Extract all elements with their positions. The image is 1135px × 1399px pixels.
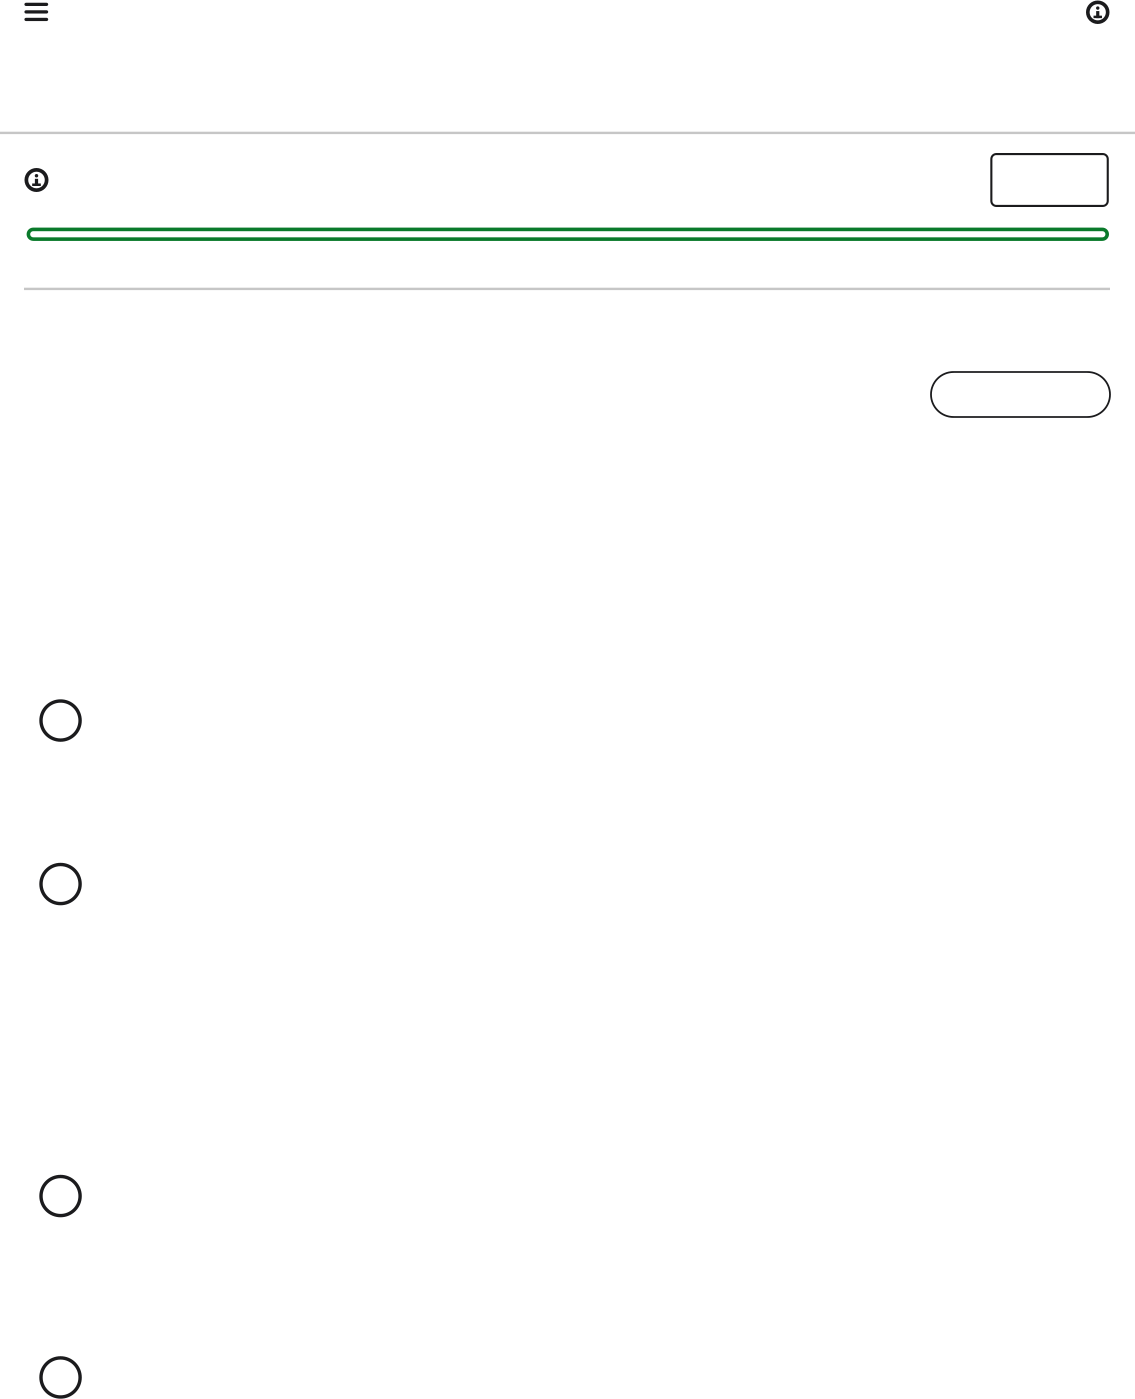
button[interactable]: Information [1086,0,1134,48]
button[interactable]: Option 3 [39,1175,1099,1295]
button[interactable]: Menu [24,3,88,51]
button[interactable]: Option 1 [39,699,1099,819]
button[interactable]: Progress count [990,153,1109,207]
button[interactable]: Continue [931,372,1110,417]
button[interactable]: About this step [24,168,72,216]
button[interactable]: Option 2 [39,863,1099,983]
button[interactable]: Option 4 [39,1356,1099,1399]
